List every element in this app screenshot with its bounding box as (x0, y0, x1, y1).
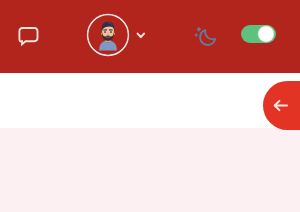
button[interactable]: Back (263, 81, 300, 130)
button[interactable]: Profile (87, 14, 129, 56)
button[interactable]: Dark mode (190, 21, 220, 51)
button[interactable]: Expand account (130, 24, 152, 46)
button[interactable]: Toggle dark mode (241, 25, 276, 43)
button[interactable]: Messages (12, 21, 45, 52)
